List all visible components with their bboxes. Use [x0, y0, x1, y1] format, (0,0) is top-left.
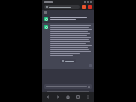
button[interactable] [44, 5, 80, 9]
button[interactable]: Back [44, 93, 52, 101]
button[interactable]: Tabs [82, 5, 86, 9]
button[interactable] [44, 84, 92, 89]
button[interactable] [60, 59, 76, 63]
button[interactable]: More [84, 93, 92, 101]
button[interactable]: Forward [54, 93, 62, 101]
button[interactable]: Tabs [74, 93, 82, 101]
button[interactable]: Home [64, 93, 72, 101]
button[interactable]: Menu [88, 5, 92, 9]
